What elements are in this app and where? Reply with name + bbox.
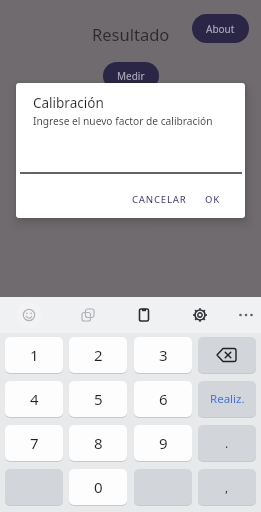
button[interactable]: Medir	[103, 62, 159, 90]
button[interactable]: Realiz.	[198, 381, 256, 417]
staticText: 2	[94, 345, 103, 365]
button[interactable]: 3	[134, 337, 192, 373]
button[interactable]: 4	[5, 381, 63, 417]
staticText: 1	[30, 345, 39, 365]
staticText: 6	[159, 389, 168, 409]
button[interactable]: .	[198, 425, 256, 461]
button[interactable]: 1	[5, 337, 63, 373]
staticText: 7	[30, 433, 39, 453]
button[interactable]: OK	[205, 193, 221, 206]
staticText: OK	[205, 193, 221, 206]
staticText: 0	[94, 477, 103, 497]
button[interactable]: 0	[69, 469, 127, 505]
staticText: 8	[94, 433, 103, 453]
button[interactable]	[232, 301, 260, 329]
button[interactable]: 5	[69, 381, 127, 417]
staticText: Medir	[117, 69, 145, 83]
button[interactable]	[130, 301, 158, 329]
staticText: About	[206, 22, 235, 36]
staticText: Calibración	[33, 94, 104, 112]
staticText: 3	[159, 345, 168, 365]
staticText: .	[225, 435, 229, 451]
button[interactable]: ,	[198, 469, 256, 505]
staticText: Resultado	[92, 23, 170, 45]
button[interactable]: 6	[134, 381, 192, 417]
button[interactable]	[198, 337, 256, 373]
staticText: Ingrese el nuevo factor de calibración	[33, 114, 213, 128]
staticText: 9	[159, 433, 168, 453]
button[interactable]: 8	[69, 425, 127, 461]
button[interactable]	[186, 301, 214, 329]
button[interactable]: 9	[134, 425, 192, 461]
staticText: CANCELAR	[132, 193, 187, 206]
staticText: 4	[30, 389, 39, 409]
button[interactable]	[74, 301, 102, 329]
staticText: 5	[94, 389, 103, 409]
button[interactable]	[15, 301, 43, 329]
staticText: Realiz.	[210, 391, 245, 407]
button[interactable]: 2	[69, 337, 127, 373]
button[interactable]: 7	[5, 425, 63, 461]
staticText: ,	[225, 479, 229, 495]
button[interactable]: About	[192, 14, 249, 43]
button[interactable]: CANCELAR	[132, 193, 187, 206]
